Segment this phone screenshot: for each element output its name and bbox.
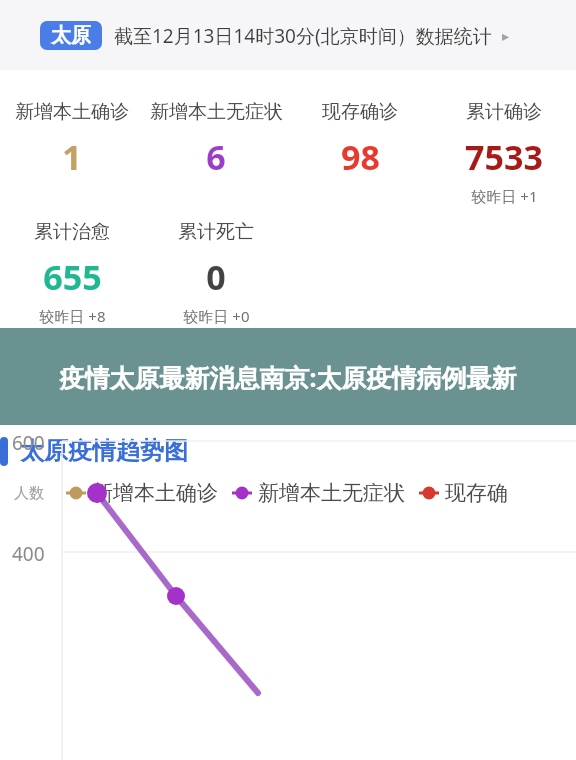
staticText: 0 <box>206 254 226 300</box>
staticText: 655 <box>43 254 102 300</box>
staticText: 较昨日 +0 <box>183 306 250 326</box>
button[interactable]: 新增本土确诊 <box>0 100 144 180</box>
staticText: 人数 <box>14 484 44 503</box>
staticText: 400 <box>12 541 45 567</box>
button[interactable]: 新增本土无症状 <box>144 100 288 180</box>
button[interactable]: 新增本土无症状 <box>232 480 405 506</box>
staticText: 98 <box>341 134 380 180</box>
button[interactable]: 现存确诊 <box>288 100 432 180</box>
button[interactable]: 现存确 <box>419 480 508 506</box>
staticText: 较昨日 +8 <box>39 306 106 326</box>
button[interactable]: 累计确诊 <box>432 100 576 206</box>
button[interactable]: 累计死亡 <box>144 220 288 326</box>
staticText: ▸ <box>502 28 510 44</box>
staticText: 1 <box>62 134 82 180</box>
staticText: 6 <box>206 134 226 180</box>
staticText: 太原 <box>51 23 91 48</box>
staticText: 7533 <box>465 134 543 180</box>
staticText: 较昨日 +1 <box>471 186 538 206</box>
staticText: 600 <box>12 430 45 456</box>
button[interactable]: 疫情太原最新消息南京:太原疫情病例最新 <box>0 328 576 425</box>
staticText: 新增本土无症状 <box>258 480 405 506</box>
other: 现存确 <box>419 486 439 500</box>
staticText: 疫情太原最新消息南京:太原疫情病例最新 <box>46 360 530 394</box>
other: 新增本土无症状 <box>232 486 252 500</box>
staticText: 新增本土无症状 <box>150 100 283 124</box>
other: 新增本土确诊 <box>66 486 86 500</box>
staticText: 累计死亡 <box>178 220 254 244</box>
staticText: 累计治愈 <box>34 220 110 244</box>
button[interactable]: 累计治愈 <box>0 220 144 326</box>
staticText: 新增本土确诊 <box>15 100 129 124</box>
staticText: 新增本土确诊 <box>92 480 218 506</box>
staticText: 现存确 <box>445 480 508 506</box>
staticText: 截至12月13日14时30分(北京时间）数据统计 <box>114 23 492 49</box>
staticText: 太原疫情趋势图 <box>20 436 188 466</box>
button[interactable]: 新增本土确诊 <box>66 480 218 506</box>
button[interactable]: 太原 <box>40 21 102 50</box>
staticText: 累计确诊 <box>466 100 542 124</box>
staticText: 现存确诊 <box>322 100 398 124</box>
